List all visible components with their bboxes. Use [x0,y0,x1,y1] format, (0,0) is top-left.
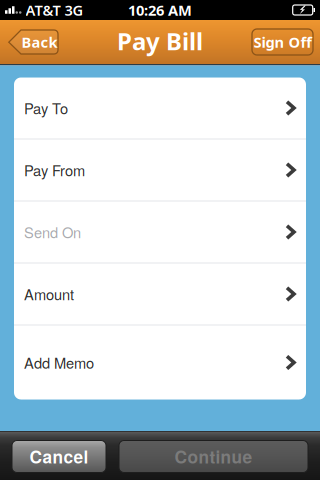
button[interactable]: Pay To [14,77,306,138]
button[interactable]: Amount [14,263,306,324]
button[interactable]: Cancel [12,440,106,472]
staticText: Continue [174,444,252,469]
staticText: Add Memo [24,352,94,373]
staticText: Cancel [29,444,88,469]
staticText: Amount [24,283,74,304]
button[interactable]: Pay From [14,139,306,200]
button[interactable]: Back [8,29,59,55]
button[interactable]: Add Memo [14,325,306,399]
staticText: 3G [64,0,83,20]
staticText: 10:26 AM [128,0,192,20]
staticText: Back [21,32,57,52]
staticText: Sign Off [253,32,311,52]
button[interactable]: Continue [119,440,308,472]
staticText: Pay From [24,159,85,180]
button[interactable]: Send On [14,201,306,262]
staticText: Pay To [24,97,68,118]
button[interactable]: Sign Off [252,29,313,55]
staticText: AT&T [25,0,60,20]
staticText: Send On [24,221,81,242]
staticText: Pay Bill [117,25,203,57]
